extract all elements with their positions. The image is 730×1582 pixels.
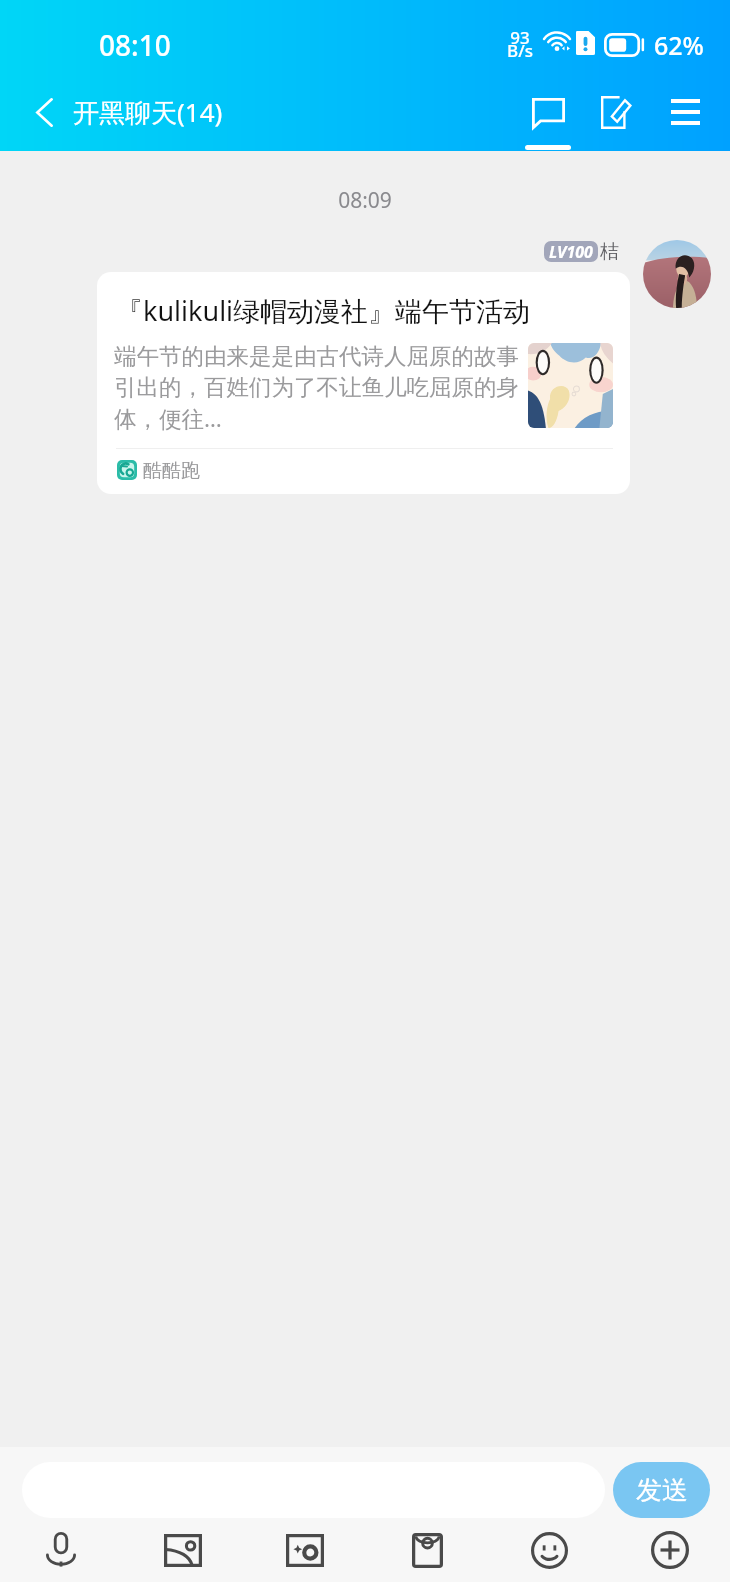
button[interactable]: Compose	[584, 84, 648, 140]
staticText: 端午节的由来是是由古代诗人屈原的故事引出的，百姓们为了不让鱼儿吃屈原的身体，便往…	[114, 342, 526, 434]
button[interactable]: Photo	[122, 1518, 244, 1582]
button[interactable]: Chat	[513, 86, 583, 151]
button[interactable]: 发送	[613, 1462, 710, 1518]
staticText: LV100	[549, 241, 593, 262]
staticText: 发送	[636, 1474, 688, 1507]
button[interactable]: Red packet	[366, 1518, 488, 1582]
button[interactable]: Menu	[654, 84, 716, 140]
staticText: 开黑聊天(14)	[73, 94, 223, 130]
button[interactable]: 『kulikuli绿帽动漫社』端午节活动	[97, 272, 630, 494]
button[interactable]: Sticker	[244, 1518, 366, 1582]
button[interactable]: More	[610, 1518, 730, 1582]
staticText: 62%	[654, 28, 704, 62]
staticText: 酷酷跑	[143, 459, 200, 483]
staticText: 93	[506, 26, 534, 49]
staticText: B/s	[506, 39, 534, 62]
staticText: 『kulikuli绿帽动漫社』端午节活动	[116, 292, 531, 329]
staticText: 08:09	[0, 186, 730, 215]
staticText: 桔	[600, 240, 619, 264]
button[interactable]: Avatar	[643, 240, 711, 308]
staticText: 08:10	[99, 26, 171, 64]
button[interactable]: Voice message	[0, 1518, 122, 1582]
button[interactable]: Emoji	[488, 1518, 610, 1582]
button[interactable]: Back	[18, 86, 70, 138]
